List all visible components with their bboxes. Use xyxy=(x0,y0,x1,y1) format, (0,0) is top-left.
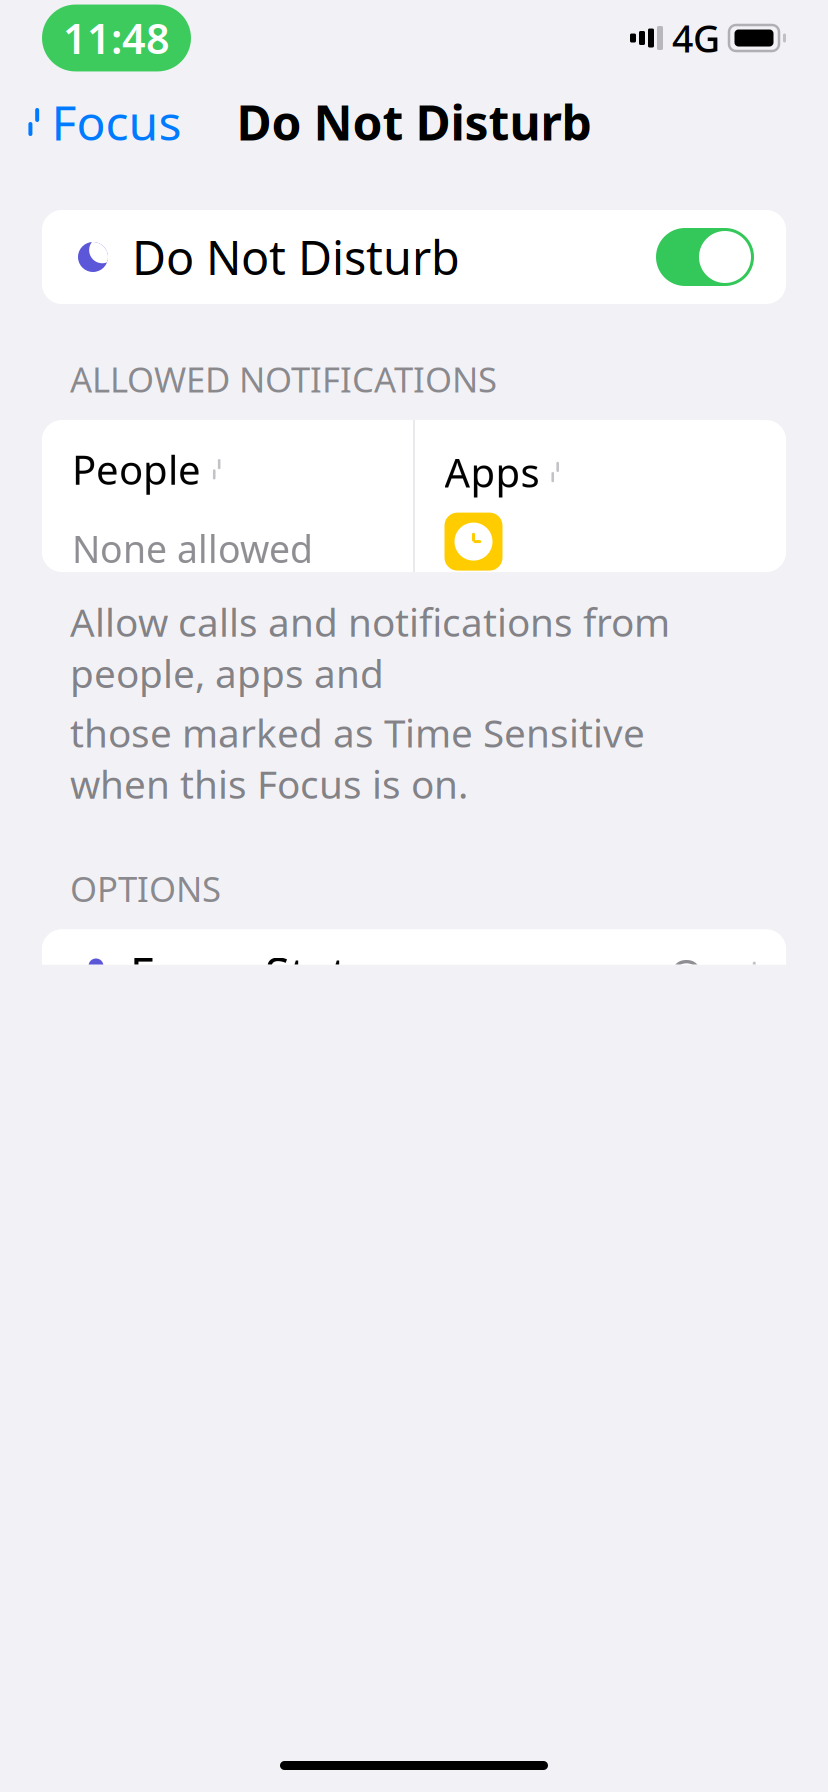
staticText: People xyxy=(72,443,201,496)
button[interactable]: Apps xyxy=(414,420,786,572)
staticText: Focus xyxy=(52,90,182,154)
staticText: OPTIONS xyxy=(70,865,221,911)
button[interactable]: Do Not Disturb xyxy=(42,210,786,304)
staticText: Do Not Disturb xyxy=(236,90,591,154)
staticText: those marked as Time Sensitive when this… xyxy=(70,707,645,809)
staticText: 4G xyxy=(672,13,720,63)
button[interactable]: People xyxy=(42,420,413,572)
button[interactable]: Focus Status xyxy=(42,929,786,1017)
staticText: ALLOWED NOTIFICATIONS xyxy=(70,356,497,402)
staticText: Focus Status xyxy=(130,943,397,1004)
button[interactable]: Focus xyxy=(0,78,208,166)
staticText: Apps xyxy=(444,445,539,499)
staticText: 11:48 xyxy=(63,11,170,65)
staticText: None allowed xyxy=(72,524,313,573)
staticText: Do Not Disturb xyxy=(132,226,460,288)
staticText: Allow calls and notifications from peopl… xyxy=(70,596,670,699)
staticText: On xyxy=(670,945,729,1002)
